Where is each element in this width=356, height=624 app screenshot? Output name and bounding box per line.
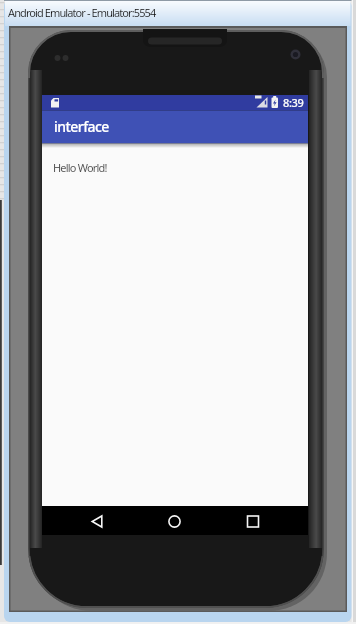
button[interactable]	[82, 506, 112, 535]
button[interactable]: interface	[42, 110, 308, 144]
staticText: Android Emulator - Emulator:5554	[8, 5, 156, 20]
staticText: interface	[54, 117, 109, 136]
staticText: 8:39	[283, 95, 304, 110]
button[interactable]	[160, 506, 190, 535]
staticText: Hello World!	[53, 160, 107, 175]
button[interactable]	[238, 506, 268, 535]
